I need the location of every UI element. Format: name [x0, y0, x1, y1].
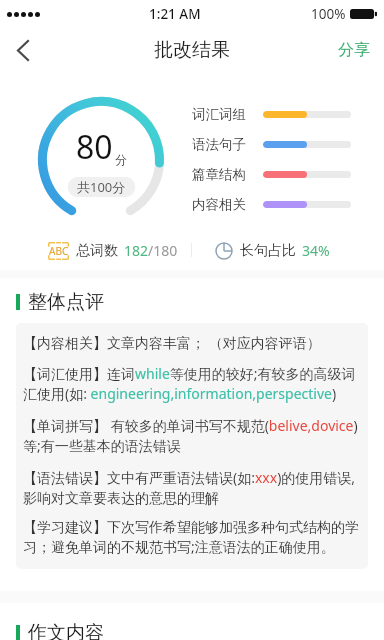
staticText: 词汇词组 — [192, 106, 246, 123]
staticText: 整体点评 — [28, 290, 104, 314]
staticText: 内容相关 — [192, 196, 246, 213]
staticText: 总词数 — [76, 242, 118, 260]
staticText: 1:21 AM — [149, 5, 201, 23]
staticText: 批改结果 — [154, 38, 230, 62]
staticText: 分享 — [338, 40, 370, 60]
staticText: 篇章结构 — [192, 166, 246, 183]
staticText: 【单词拼写】 有较多的单词书写不规范(belive,dovice)等;有一些基本… — [23, 416, 361, 456]
staticText: 【内容相关】文章内容丰富； （对应内容评语） — [23, 333, 321, 352]
staticText: 【学习建议】下次写作希望能够加强多种句式结构的学习；避免单词的不规范书写;注意语… — [23, 519, 361, 557]
button[interactable]: 分享 — [324, 28, 384, 72]
staticText: 作文内容 — [28, 621, 104, 640]
staticText: 34% — [302, 241, 330, 260]
staticText: 80 — [76, 125, 113, 169]
staticText: 分 — [115, 152, 127, 167]
staticText: 100% — [311, 5, 346, 23]
staticText: 【语法错误】文中有严重语法错误(如:xxx)的使用错误,影响对文章要表达的意思的… — [23, 468, 361, 507]
staticText: 182/180 — [124, 241, 178, 260]
staticText: 共100分 — [77, 178, 126, 196]
staticText: 语法句子 — [192, 136, 246, 153]
staticText: 长句占比 — [240, 242, 296, 260]
button[interactable]: Back — [0, 28, 45, 72]
staticText: 【词汇使用】连词while等使用的较好;有较多的高级词汇使用(如: engine… — [23, 364, 361, 404]
staticText: ABC — [49, 244, 69, 258]
